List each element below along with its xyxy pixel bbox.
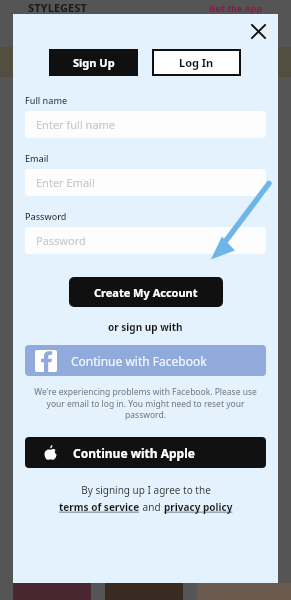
staticText: Full name xyxy=(25,94,68,106)
staticText: Enter Email xyxy=(36,175,95,190)
staticText: Continue with Apple xyxy=(73,445,195,461)
button[interactable]: Password xyxy=(25,227,266,254)
staticText: Create My Account xyxy=(94,285,198,300)
staticText: Password xyxy=(25,210,67,222)
button[interactable]: Continue with Facebook xyxy=(25,345,266,376)
staticText: Enter full name xyxy=(36,117,116,132)
button[interactable]: Close xyxy=(245,18,271,44)
staticText: or sign up with xyxy=(108,320,183,334)
staticText: Sign Up xyxy=(73,55,115,70)
staticText: and xyxy=(140,500,164,514)
staticText: Get the App xyxy=(209,2,263,14)
button[interactable]: Log In xyxy=(152,49,241,76)
button[interactable]: Continue with Apple xyxy=(25,437,266,468)
staticText: Email xyxy=(25,152,49,164)
button[interactable]: Enter full name xyxy=(25,111,266,138)
button[interactable]: Create My Account xyxy=(69,277,223,307)
button[interactable]: Enter Email xyxy=(25,169,266,196)
staticText: Log In xyxy=(179,55,214,70)
staticText: By signing up I agree to the xyxy=(81,483,211,497)
staticText: Continue with Facebook xyxy=(71,353,207,369)
button[interactable]: terms of service xyxy=(59,500,140,514)
button[interactable]: Sign Up xyxy=(49,49,138,76)
staticText: STYLEGEST xyxy=(28,0,87,14)
button[interactable]: privacy policy xyxy=(164,500,233,514)
staticText: Password xyxy=(36,233,86,248)
staticText: We're experiencing problems with Faceboo… xyxy=(27,386,264,421)
